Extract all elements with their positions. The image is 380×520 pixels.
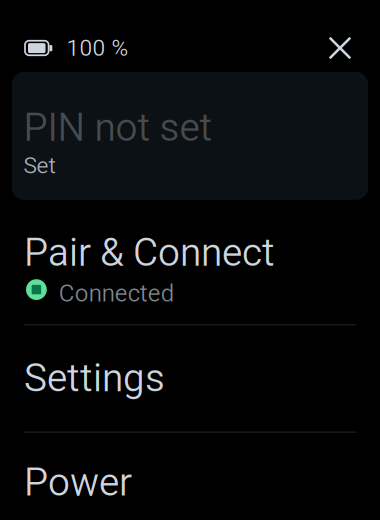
button[interactable]: PIN not set	[12, 72, 368, 200]
staticText: 100 %	[67, 35, 129, 61]
staticText: Set	[23, 152, 55, 179]
staticText: Settings	[24, 355, 165, 401]
button[interactable]: Close	[320, 28, 360, 68]
button[interactable]: Pair & Connect	[0, 200, 380, 324]
staticText: Pair & Connect	[24, 230, 275, 275]
staticText: Power	[24, 460, 132, 505]
staticText: Connected	[59, 279, 174, 307]
button[interactable]: Settings	[0, 325, 380, 432]
staticText: PIN not set	[23, 105, 212, 150]
button[interactable]: Power	[0, 433, 380, 520]
